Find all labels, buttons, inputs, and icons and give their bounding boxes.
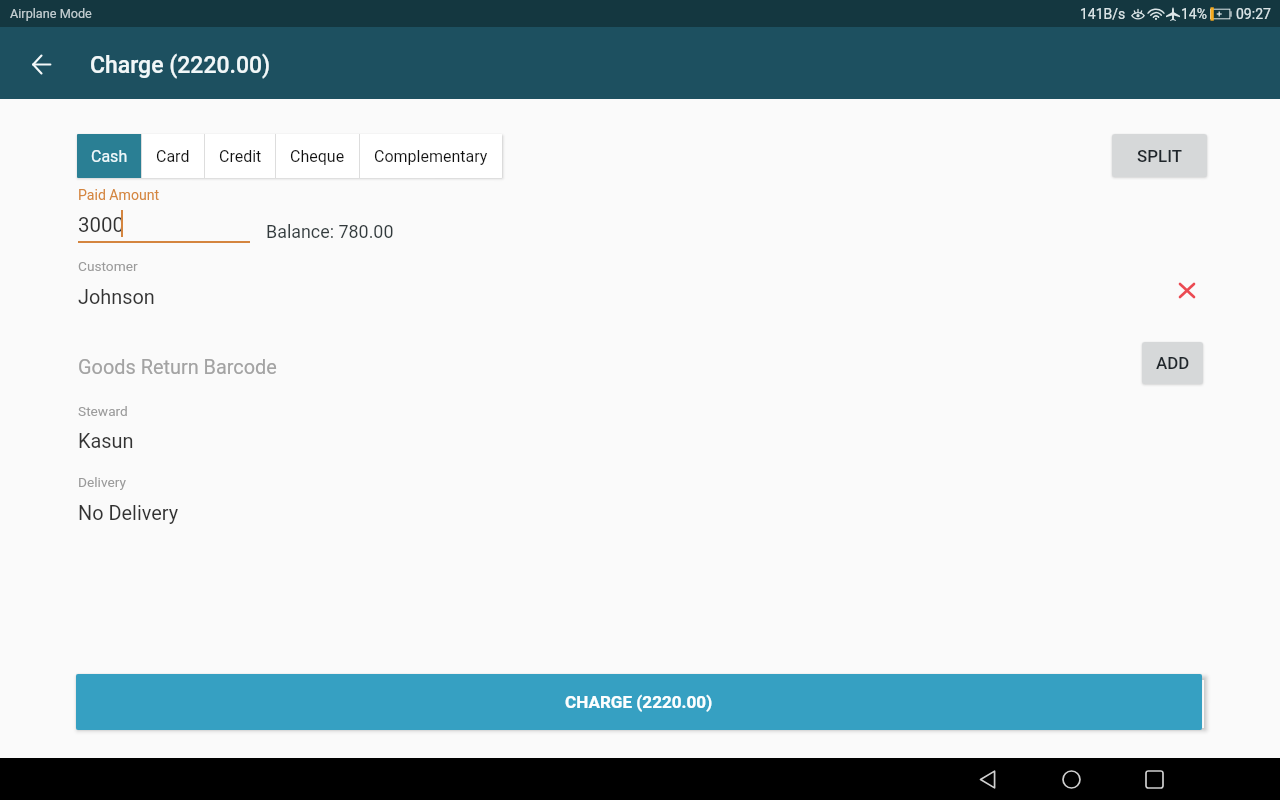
button[interactable] — [78, 186, 250, 243]
button[interactable]: Credit — [205, 134, 275, 178]
staticText: Kasun — [78, 430, 134, 453]
staticText: ADD — [1156, 353, 1190, 373]
button[interactable]: SPLIT — [1112, 134, 1207, 177]
staticText: Airplane Mode — [10, 6, 92, 21]
staticText: Balance: 780.00 — [266, 221, 394, 242]
button[interactable] — [78, 345, 1128, 383]
staticText: Cash — [91, 147, 128, 166]
staticText: Goods Return Barcode — [78, 356, 277, 379]
staticText: Johnson — [78, 286, 155, 309]
button[interactable] — [78, 400, 1203, 454]
staticText: Cheque — [290, 147, 345, 166]
button[interactable]: Home — [1047, 758, 1095, 800]
button[interactable]: Cash — [77, 134, 141, 178]
button[interactable]: Complementary — [360, 134, 502, 178]
staticText: Card — [156, 147, 190, 166]
button[interactable]: Remove customer — [1168, 272, 1205, 309]
staticText: Paid Amount — [78, 187, 160, 204]
staticText: No Delivery — [78, 502, 179, 525]
staticText: Customer — [78, 258, 138, 274]
button[interactable]: Card — [142, 134, 204, 178]
button[interactable]: Back — [21, 44, 62, 85]
staticText: 141B/s — [1080, 6, 1126, 22]
button[interactable]: Recent apps — [1130, 758, 1178, 800]
staticText: Delivery — [78, 474, 126, 490]
staticText: SPLIT — [1137, 146, 1182, 166]
button[interactable]: Back — [964, 758, 1012, 800]
staticText: CHARGE (2220.00) — [565, 692, 713, 712]
staticText: Steward — [78, 403, 128, 419]
button[interactable] — [78, 255, 1168, 310]
button[interactable]: CHARGE (2220.00) — [76, 674, 1202, 730]
staticText: 14% — [1181, 6, 1207, 22]
staticText: Credit — [219, 147, 262, 166]
staticText: Complementary — [374, 147, 488, 166]
staticText: Charge (2220.00) — [90, 52, 271, 79]
button[interactable] — [78, 471, 1203, 525]
button[interactable]: ADD — [1142, 342, 1203, 384]
button[interactable]: Cheque — [276, 134, 359, 178]
staticText: 09:27 — [1236, 6, 1271, 22]
staticText: 3000 — [78, 213, 125, 237]
